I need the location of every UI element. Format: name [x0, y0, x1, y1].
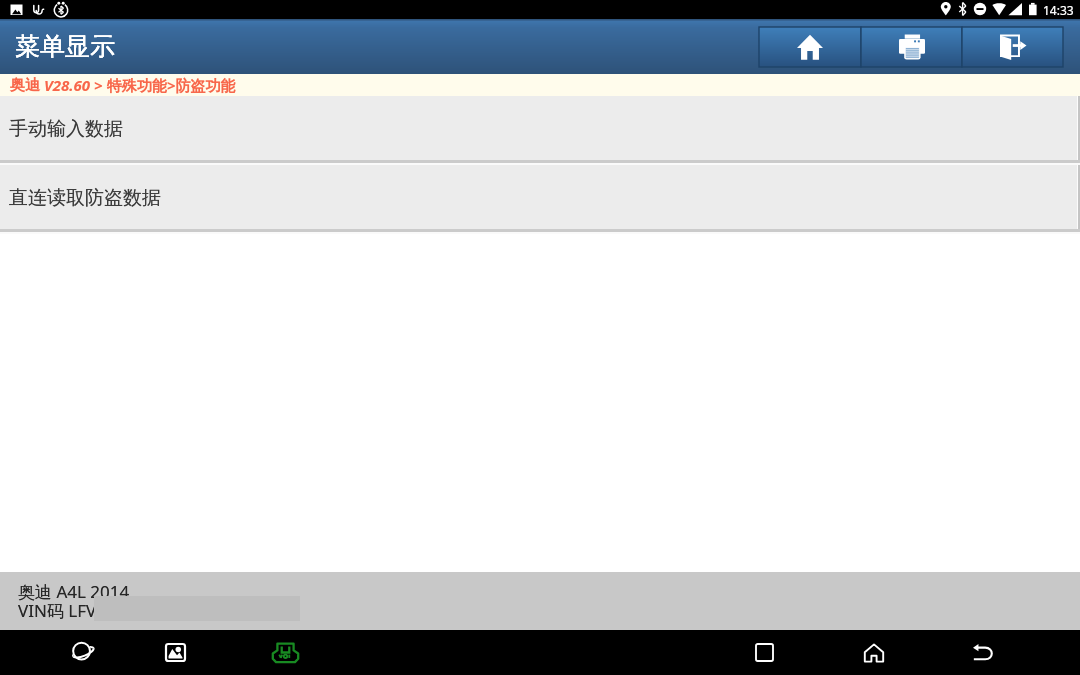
- staticText: 14:33: [1043, 2, 1074, 18]
- staticText: 奥迪 A4L 2014: [18, 580, 130, 603]
- staticText: VIN码 LFV: [18, 599, 97, 622]
- staticText: 手动输入数据: [9, 117, 123, 141]
- button[interactable]: Back: [961, 630, 1005, 675]
- staticText: 直连读取防盗数据: [9, 186, 161, 210]
- staticText: 手动输入数据: [9, 117, 123, 141]
- staticText: VIN码 LFV: [18, 599, 97, 622]
- button[interactable]: 手动输入数据: [0, 96, 1080, 160]
- button[interactable]: Home: [852, 630, 896, 675]
- staticText: V28.60 >: [40, 75, 107, 95]
- staticText: 菜单显示: [15, 31, 115, 62]
- button[interactable]: Exit: [962, 27, 1063, 67]
- staticText: 奥迪: [10, 76, 40, 95]
- staticText: 特殊功能>防盗功能: [107, 75, 236, 95]
- button[interactable]: Home: [759, 27, 861, 67]
- staticText: 奥迪 A4L 2014: [18, 580, 130, 603]
- button[interactable]: 直连读取防盗数据: [0, 165, 1080, 229]
- button[interactable]: Recents: [742, 630, 786, 675]
- button[interactable]: Print: [861, 27, 962, 67]
- button[interactable]: VCI: [263, 630, 307, 675]
- button[interactable]: Browser: [60, 630, 104, 675]
- staticText: 直连读取防盗数据: [9, 186, 161, 210]
- button[interactable]: Gallery: [153, 630, 197, 675]
- staticText: 菜单显示: [15, 31, 115, 62]
